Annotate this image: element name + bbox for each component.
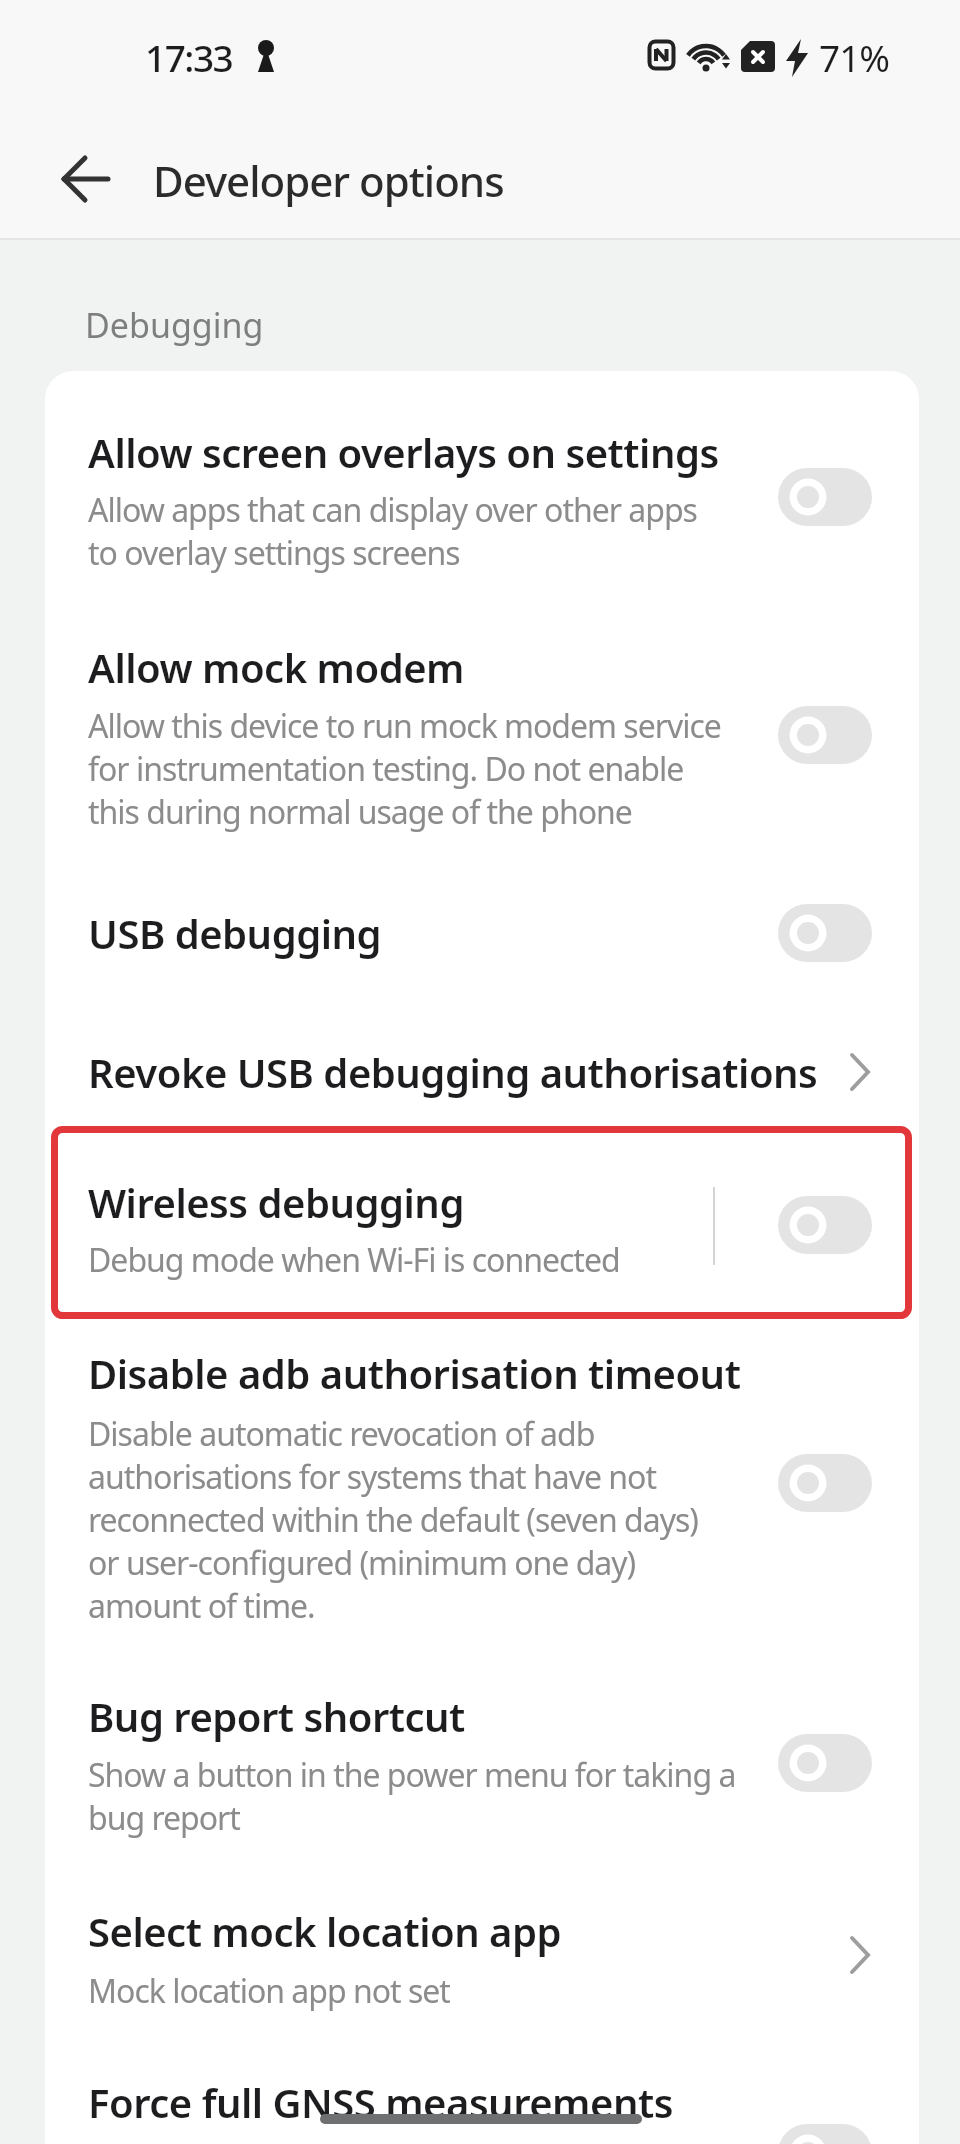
staticText: Bug report shortcut — [88, 1689, 465, 1743]
button[interactable] — [45, 2048, 916, 2144]
button[interactable] — [62, 157, 110, 201]
button[interactable] — [778, 1734, 872, 1792]
button[interactable] — [45, 878, 916, 988]
staticText: 17:33 — [145, 32, 233, 82]
staticText: Mock location app not set — [88, 1969, 450, 2012]
button[interactable] — [45, 1662, 916, 1842]
button[interactable] — [45, 1017, 916, 1127]
staticText: Debug mode when Wi-Fi is connected — [88, 1238, 620, 1281]
button[interactable] — [778, 468, 872, 526]
button[interactable] — [45, 1877, 916, 2037]
button[interactable] — [45, 1330, 916, 1630]
staticText: Allow apps that can display over other a… — [88, 488, 697, 574]
staticText: Select mock location app — [88, 1904, 562, 1958]
staticText: Revoke USB debugging authorisations — [88, 1045, 818, 1099]
button[interactable] — [778, 706, 872, 764]
staticText: Show a button in the power menu for taki… — [88, 1753, 736, 1839]
staticText: Wireless debugging — [88, 1175, 464, 1229]
button[interactable] — [45, 1140, 916, 1305]
staticText: Developer options — [153, 152, 504, 209]
staticText: Allow this device to run mock modem serv… — [88, 704, 721, 833]
staticText: Debugging — [85, 302, 264, 348]
button[interactable] — [778, 1196, 872, 1254]
staticText: Force full GNSS measurements — [88, 2075, 673, 2129]
staticText: USB debugging — [88, 906, 382, 960]
staticText: 71% — [819, 32, 890, 82]
button[interactable] — [778, 2124, 872, 2144]
button[interactable] — [778, 1454, 872, 1512]
staticText: Allow mock modem — [88, 640, 464, 694]
staticText: Allow screen overlays on settings — [88, 425, 719, 479]
staticText: Disable automatic revocation of adb auth… — [88, 1412, 698, 1627]
staticText: Disable adb authorisation timeout — [88, 1346, 741, 1400]
button[interactable] — [45, 613, 916, 861]
button[interactable] — [778, 904, 872, 962]
button[interactable] — [45, 398, 916, 603]
